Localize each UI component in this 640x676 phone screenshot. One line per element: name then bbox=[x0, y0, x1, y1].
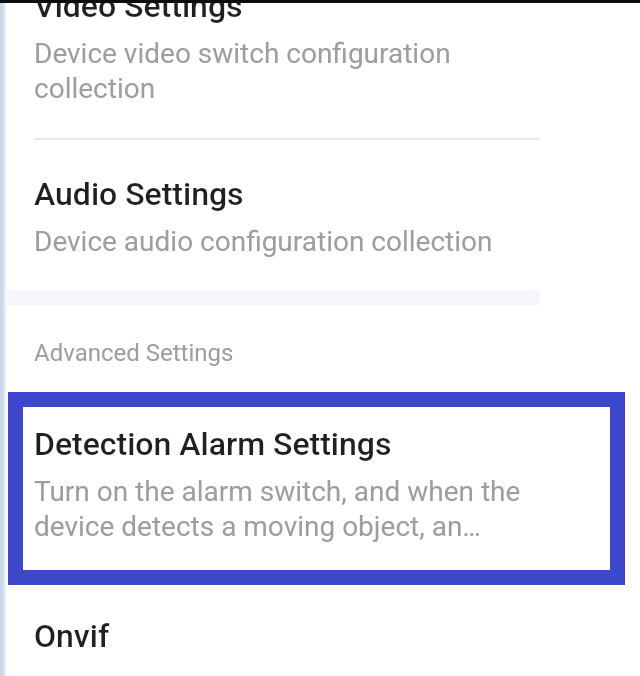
staticText: Device audio configuration collection bbox=[34, 225, 493, 258]
button[interactable]: Video Settings bbox=[0, 0, 640, 126]
button[interactable]: Audio Settings bbox=[0, 140, 640, 290]
staticText: Advanced Settings bbox=[34, 339, 234, 367]
staticText: Audio Settings bbox=[34, 175, 244, 213]
staticText: Detection Alarm Settings bbox=[34, 425, 392, 463]
button[interactable]: Onvif bbox=[0, 585, 640, 676]
button[interactable]: Detection Alarm Settings bbox=[8, 392, 625, 585]
staticText: Video Settings bbox=[34, 0, 243, 25]
staticText: Turn on the alarm switch, and when the d… bbox=[34, 475, 521, 543]
staticText: Device video switch configuration collec… bbox=[34, 37, 451, 105]
staticText: Onvif bbox=[34, 617, 110, 655]
